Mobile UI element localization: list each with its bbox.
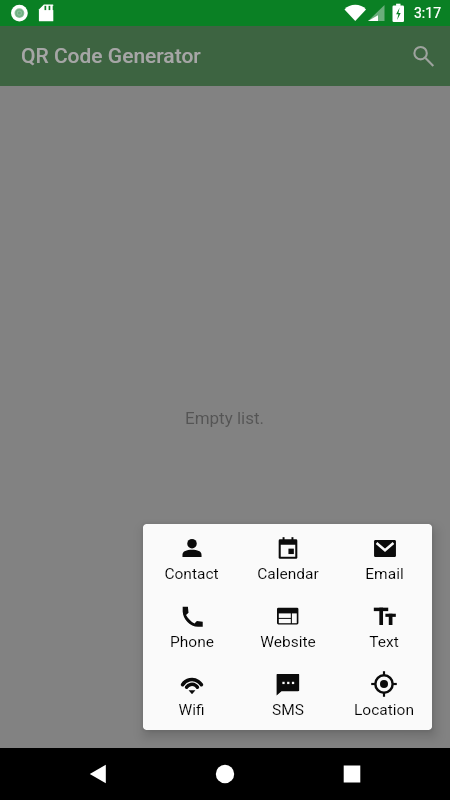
staticText: Wifi [178, 701, 205, 719]
staticText: Email [365, 565, 404, 583]
staticText: 3:17 [414, 5, 441, 21]
staticText: Contact [164, 565, 219, 583]
button[interactable]: Search [397, 32, 445, 80]
button[interactable]: Wifi [143, 661, 240, 729]
button[interactable]: Contact [143, 524, 240, 593]
button[interactable]: Website [240, 593, 336, 661]
staticText: QR Code Generator [21, 44, 201, 69]
button[interactable]: Home [201, 750, 249, 798]
button[interactable]: Recents [328, 750, 376, 798]
button[interactable]: Calendar [240, 524, 336, 593]
staticText: Phone [170, 633, 214, 651]
button[interactable]: Back [74, 750, 122, 798]
staticText: Empty list. [185, 408, 265, 428]
button[interactable]: Phone [143, 593, 240, 661]
button[interactable]: Text [336, 593, 432, 661]
button[interactable]: Location [336, 661, 432, 729]
staticText: SMS [272, 701, 304, 719]
staticText: Website [260, 633, 316, 651]
staticText: Text [369, 633, 399, 651]
button[interactable]: SMS [240, 661, 336, 729]
staticText: Calendar [257, 565, 319, 583]
staticText: Location [354, 701, 414, 719]
button[interactable]: Email [336, 524, 432, 593]
